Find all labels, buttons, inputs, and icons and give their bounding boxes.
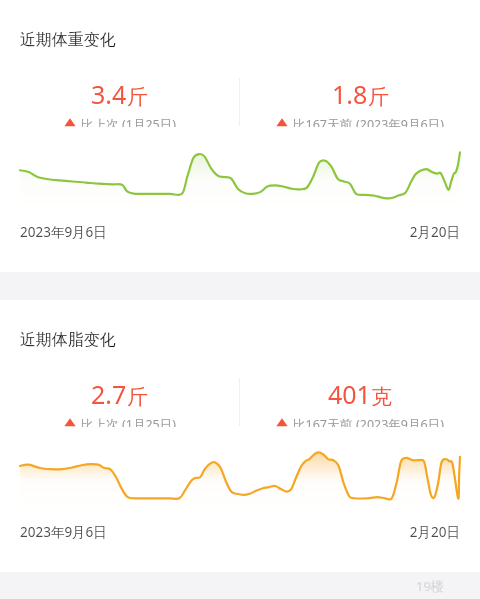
staticText: 比167天前	[293, 116, 356, 127]
other: Increase	[64, 417, 76, 427]
staticText: 3.4	[91, 77, 127, 111]
staticText: (1月25日)	[122, 416, 176, 427]
staticText: 比上次	[81, 416, 122, 427]
staticText: 克	[371, 384, 392, 410]
staticText: 401	[328, 377, 371, 411]
button[interactable]: 3.4	[0, 77, 239, 127]
button[interactable]: 2.7	[0, 377, 239, 427]
staticText: 2月20日	[409, 223, 460, 241]
staticText: 比上次	[81, 116, 122, 127]
staticText: 近期体重变化	[20, 30, 116, 50]
staticText: (2023年9月6日)	[356, 116, 444, 127]
other: Increase	[276, 117, 288, 127]
staticText: 2023年9月6日	[20, 223, 107, 241]
staticText: 2月20日	[409, 523, 460, 541]
staticText: 19楼	[416, 577, 444, 595]
button[interactable]: 近期体脂变化	[0, 300, 480, 572]
staticText: (2023年9月6日)	[356, 416, 444, 427]
staticText: 近期体脂变化	[20, 330, 116, 350]
staticText: 斤	[127, 384, 148, 410]
button[interactable]: 近期体重变化	[0, 0, 480, 272]
staticText: 2.7	[91, 377, 127, 411]
other: Increase	[276, 417, 288, 427]
staticText: 比167天前	[293, 416, 356, 427]
button[interactable]: 401	[240, 377, 480, 427]
button[interactable]: 1.8	[240, 77, 480, 127]
staticText: (1月25日)	[122, 116, 176, 127]
staticText: 斤	[127, 84, 148, 110]
staticText: 1.8	[332, 77, 368, 111]
staticText: 斤	[368, 84, 389, 110]
staticText: 2023年9月6日	[20, 523, 107, 541]
other: Increase	[64, 117, 76, 127]
